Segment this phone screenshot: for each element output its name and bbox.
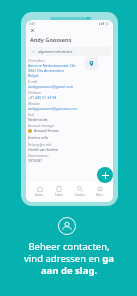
button[interactable]: Meer [94,182,106,201]
staticText: Hoofd van Karlien [28,147,59,152]
staticText: Privé adres [28,59,45,63]
staticText: Zoeken [75,193,85,197]
button[interactable]: Zoeken [73,182,87,201]
staticText: Website [28,102,40,106]
staticText: België [28,73,39,78]
staticText: Andy Goossens [30,36,72,44]
staticText: Arnaud Smans [34,128,59,133]
staticText: Belangrijke info [28,143,52,147]
staticText: Meer [96,193,104,197]
staticText: 9:41 [29,22,36,26]
button[interactable]: Map [85,57,98,70]
button[interactable]: algemene informatie [28,47,111,56]
staticText: 3041 Dm Amsterdam [28,68,64,73]
staticText: Klantnummer [28,154,49,158]
staticText: andygoossens@goossens.eu [28,106,77,111]
staticText: Acties [35,193,44,197]
staticText: andygoossens@gmail.com [28,84,74,89]
staticText: Taken [55,193,63,197]
staticText: Account manager [28,124,55,128]
button[interactable]: Taken [53,182,65,201]
staticText: Taal [28,113,34,117]
staticText: Interne info [28,135,48,140]
staticText: Telefoon [28,91,41,95]
button[interactable]: Close [30,28,35,33]
staticText: 3975041 [28,158,43,163]
staticText: +31 485 51 34 58 [28,95,57,100]
staticText: E-mail [28,80,38,84]
staticText: Nederlands [28,117,48,122]
button[interactable]: Acties [33,182,46,201]
staticText: Adres te Nederdaarnaat 74n [28,63,76,68]
staticText: algemene informatie [38,49,73,54]
button[interactable]: Add [97,167,113,183]
staticText: Beheer contacten, vind adressen en ga aa… [24,240,114,277]
